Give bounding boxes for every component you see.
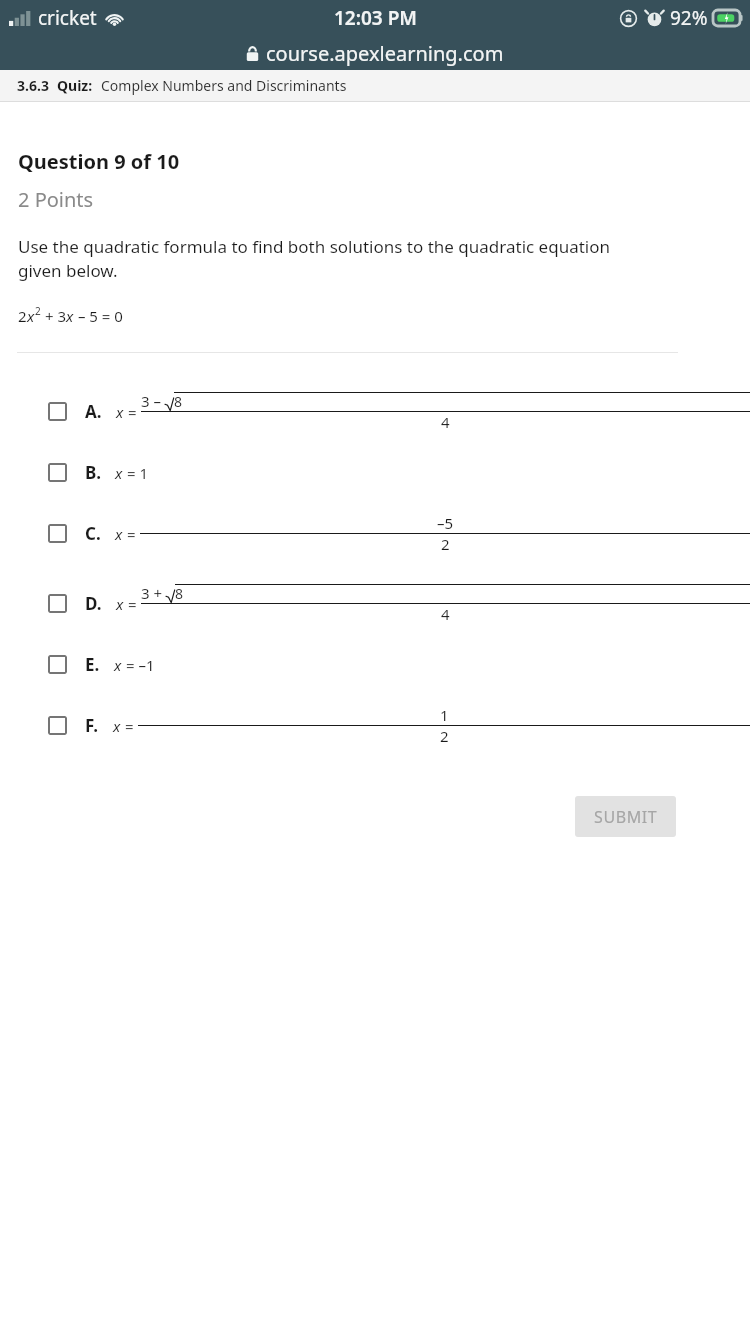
- staticText: 3 –: [141, 391, 165, 411]
- staticText: Use the quadratic formula to find both s…: [18, 235, 650, 282]
- staticText: x: [66, 306, 74, 326]
- other: Option D. checkbox: [48, 594, 67, 613]
- staticText: =: [121, 716, 138, 736]
- staticText: B.: [85, 461, 101, 484]
- button[interactable]: Option B. checkbox: [0, 455, 750, 490]
- staticText: 2: [441, 534, 450, 554]
- staticText: x: [116, 402, 124, 422]
- staticText: 2: [35, 304, 41, 318]
- button[interactable]: Option F. checkbox: [0, 699, 750, 752]
- staticText: 12:03 PM: [334, 5, 417, 31]
- other: Option F. checkbox: [48, 716, 67, 735]
- other: Option E. checkbox: [48, 655, 67, 674]
- staticText: 2: [440, 726, 449, 746]
- staticText: cricket: [38, 5, 97, 31]
- button[interactable]: Option A. checkbox: [0, 385, 750, 438]
- staticText: 4: [441, 412, 450, 432]
- staticText: 1: [440, 705, 449, 725]
- staticText: = 1: [123, 463, 148, 483]
- staticText: –5: [437, 513, 454, 533]
- staticText: =: [123, 524, 140, 544]
- staticText: 2: [18, 306, 27, 326]
- staticText: C.: [85, 522, 101, 545]
- staticText: 2 Points: [18, 186, 94, 213]
- staticText: F.: [85, 714, 99, 737]
- staticText: E.: [85, 653, 100, 676]
- button[interactable]: SUBMIT: [575, 796, 676, 837]
- staticText: x: [114, 655, 122, 675]
- staticText: 4: [441, 604, 450, 624]
- staticText: Complex Numbers and Discriminants: [101, 76, 347, 95]
- button[interactable]: Option D. checkbox: [0, 577, 750, 630]
- staticText: course.apexlearning.com: [266, 40, 504, 67]
- staticText: D.: [85, 592, 102, 615]
- staticText: x: [115, 463, 123, 483]
- staticText: SUBMIT: [594, 806, 658, 828]
- staticText: 8: [175, 584, 184, 603]
- other: Option B. checkbox: [48, 463, 67, 482]
- staticText: =: [124, 402, 141, 422]
- button[interactable]: Option E. checkbox: [0, 647, 750, 682]
- staticText: 92%: [670, 5, 708, 31]
- other: Option A. checkbox: [48, 402, 67, 421]
- staticText: x: [115, 524, 123, 544]
- other: Option C. checkbox: [48, 524, 67, 543]
- staticText: = –1: [122, 655, 155, 675]
- button[interactable]: Option C. checkbox: [0, 507, 750, 560]
- staticText: 3.6.3: [17, 76, 49, 95]
- staticText: Question 9 of 10: [18, 148, 180, 175]
- staticText: – 5 = 0: [74, 306, 123, 326]
- staticText: x: [27, 306, 35, 326]
- staticText: Quiz:: [57, 76, 93, 95]
- staticText: x: [116, 594, 124, 614]
- staticText: x: [113, 716, 121, 736]
- staticText: 8: [174, 392, 183, 411]
- staticText: 3 +: [141, 583, 166, 603]
- staticText: + 3: [41, 306, 66, 326]
- staticText: =: [124, 594, 141, 614]
- staticText: A.: [85, 400, 102, 423]
